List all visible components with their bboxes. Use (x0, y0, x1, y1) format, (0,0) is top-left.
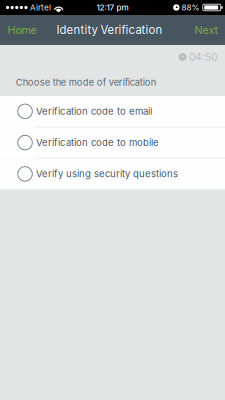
staticText: Next (194, 23, 218, 37)
staticText: Airtel (30, 3, 51, 12)
staticText: Choose the mode of verification (16, 77, 156, 88)
staticText: 04:50 (189, 51, 217, 63)
staticText: Verification code to email (36, 105, 152, 117)
button[interactable]: Verification code to email (0, 96, 225, 127)
button[interactable]: Verification code to mobile (0, 127, 225, 159)
staticText: Verify using security questions (36, 168, 178, 180)
button[interactable]: Verify using security questions (0, 159, 225, 189)
staticText: Identity Verification (56, 23, 162, 37)
staticText: Home (7, 23, 36, 37)
staticText: 88% (181, 3, 199, 12)
staticText: Verification code to mobile (36, 137, 159, 148)
button[interactable]: Next (186, 14, 225, 46)
button[interactable]: Home (0, 14, 44, 46)
staticText: 12:17 pm (96, 3, 128, 12)
